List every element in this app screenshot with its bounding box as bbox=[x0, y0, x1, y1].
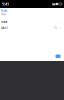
button[interactable]: Name bbox=[0, 20, 64, 24]
staticText: › bbox=[60, 19, 61, 25]
staticText: 9:41 bbox=[2, 1, 9, 7]
staticText: ▮▮▮ bbox=[52, 2, 55, 5]
button[interactable]: Send bbox=[55, 54, 60, 58]
staticText: Label bbox=[1, 26, 8, 30]
staticText: Name bbox=[1, 20, 8, 24]
button[interactable]: Label bbox=[0, 26, 64, 30]
staticText: Ho bbox=[54, 26, 58, 30]
staticText: Edit bbox=[1, 8, 7, 13]
staticText: Main bbox=[1, 12, 7, 16]
button[interactable]: Edit bbox=[0, 8, 7, 13]
staticText: › bbox=[60, 25, 61, 31]
